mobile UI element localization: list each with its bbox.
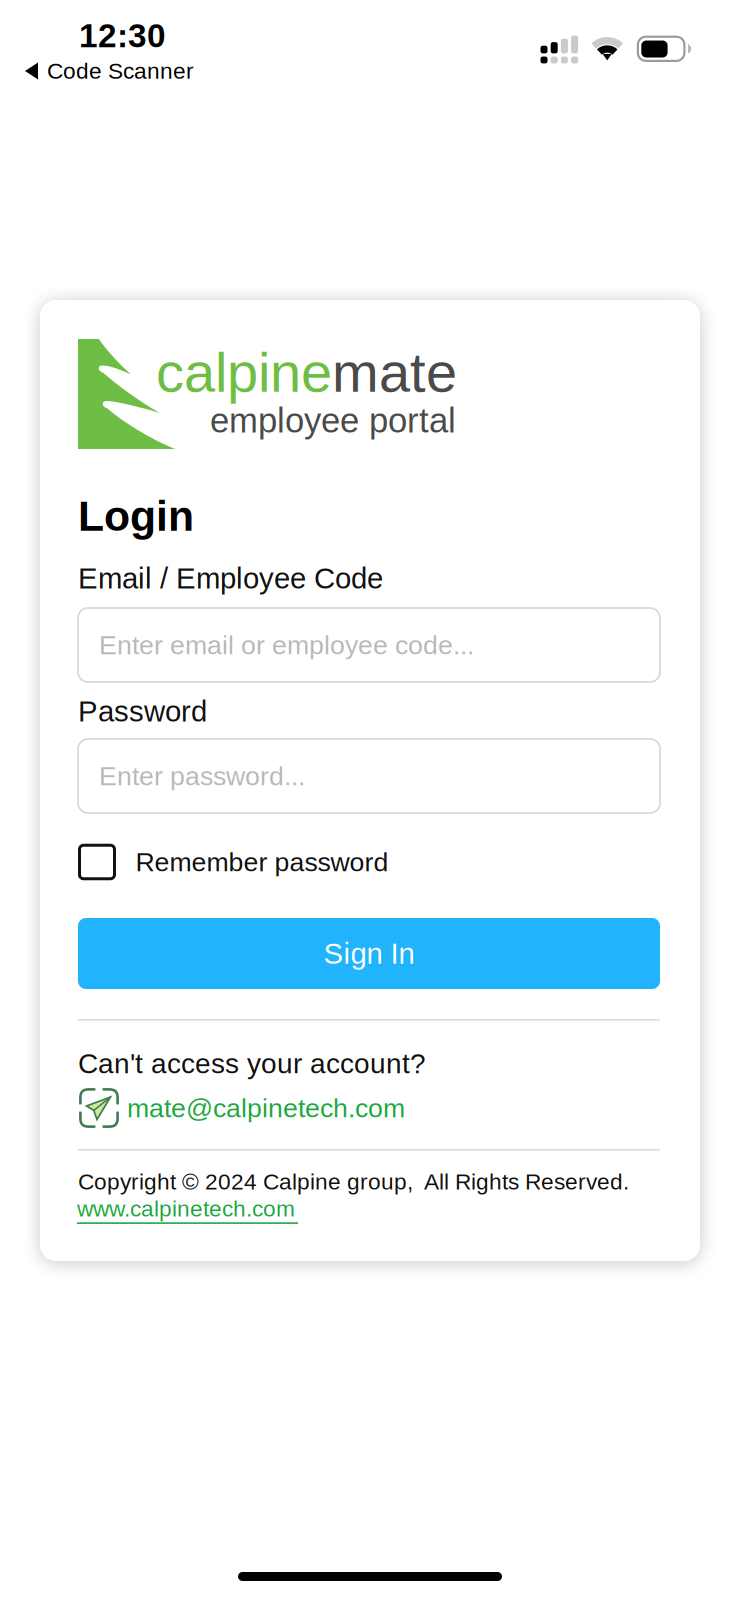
staticText: 12:30 bbox=[79, 17, 166, 54]
staticText: Can't access your account? bbox=[78, 1048, 426, 1079]
staticText: Enter password... bbox=[99, 761, 305, 791]
button[interactable]: Code Scanner bbox=[25, 58, 245, 84]
staticText: employee portal bbox=[210, 401, 456, 440]
staticText: mate bbox=[332, 341, 457, 404]
staticText: mate@calpinetech.com bbox=[127, 1093, 405, 1123]
button[interactable]: mate@calpinetech.com bbox=[79, 1088, 661, 1128]
staticText: Enter email or employee code... bbox=[99, 630, 474, 660]
button[interactable]: www.calpinetech.com bbox=[77, 1196, 307, 1224]
staticText: Sign In bbox=[323, 937, 414, 970]
staticText: Code Scanner bbox=[47, 58, 194, 84]
staticText: Email / Employee Code bbox=[78, 562, 383, 595]
staticText: Password bbox=[78, 695, 207, 728]
staticText: Login bbox=[78, 492, 194, 540]
staticText: www.calpinetech.com bbox=[77, 1196, 295, 1221]
staticText: Remember password bbox=[135, 847, 388, 877]
button[interactable]: Sign In bbox=[78, 918, 660, 989]
staticText: calpine bbox=[156, 341, 332, 404]
staticText: Copyright © 2024 Calpine group, All Righ… bbox=[78, 1169, 629, 1194]
button[interactable]: Remember password bbox=[78, 842, 660, 882]
